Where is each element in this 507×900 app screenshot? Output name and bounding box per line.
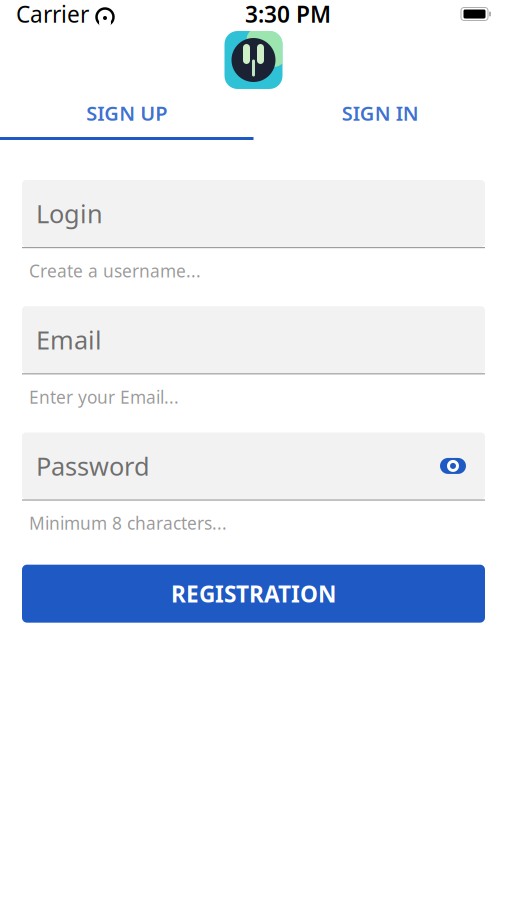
staticText: Create a username...	[29, 259, 201, 282]
staticText: Login	[36, 197, 103, 230]
staticText: 3:30 PM	[245, 0, 331, 29]
staticText: Enter your Email...	[29, 385, 179, 408]
staticText: REGISTRATION	[171, 579, 336, 609]
staticText: Password	[36, 449, 150, 483]
staticText: Email	[36, 323, 102, 356]
staticText: SIGN UP	[86, 100, 167, 126]
button[interactable]: SIGN UP	[0, 89, 253, 137]
staticText: SIGN IN	[342, 100, 419, 126]
staticText: Carrier	[16, 0, 89, 29]
button[interactable]: SIGN IN	[253, 89, 507, 137]
staticText: Minimum 8 characters...	[29, 512, 227, 535]
button[interactable]: REGISTRATION	[22, 565, 485, 623]
button[interactable]: Show password	[435, 448, 471, 484]
